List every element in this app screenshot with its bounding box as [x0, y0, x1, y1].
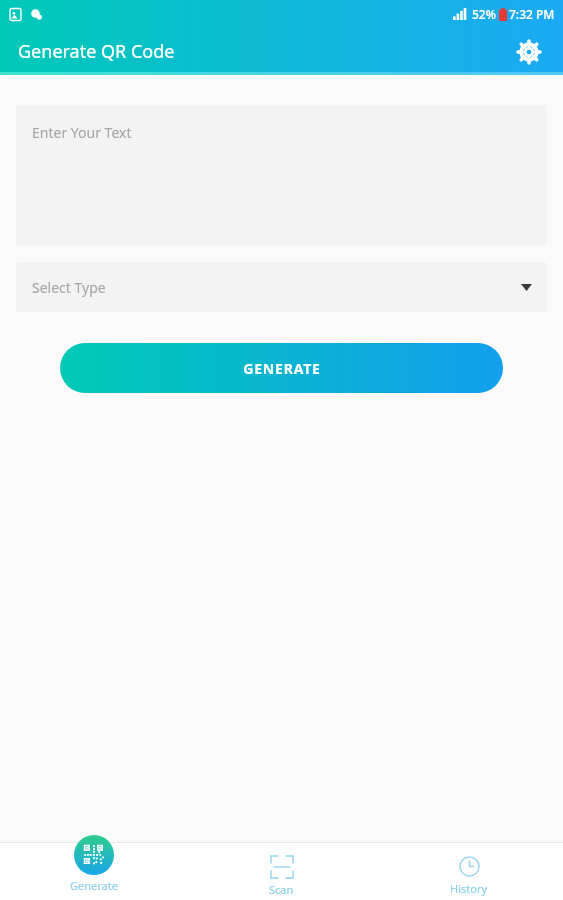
button[interactable]: Scan	[187, 840, 375, 900]
staticText: GENERATE	[243, 359, 321, 378]
staticText: 7:32 PM	[509, 6, 555, 22]
other: Scan	[271, 856, 293, 878]
button[interactable]: Select Type	[16, 262, 547, 312]
staticText: Scan	[269, 882, 294, 897]
button[interactable]: Enter Your Text	[16, 105, 547, 245]
staticText: Generate	[70, 878, 118, 893]
button[interactable]: History	[375, 840, 563, 900]
staticText: 52%	[472, 6, 496, 22]
staticText: Enter Your Text	[32, 123, 132, 142]
button[interactable]: GENERATE	[60, 343, 503, 393]
staticText: Generate QR Code	[18, 39, 175, 64]
staticText: Select Type	[32, 278, 106, 297]
staticText: History	[450, 881, 488, 896]
button[interactable]: Generate	[0, 840, 187, 900]
other: History	[459, 856, 480, 877]
button[interactable]: Settings	[511, 34, 547, 70]
